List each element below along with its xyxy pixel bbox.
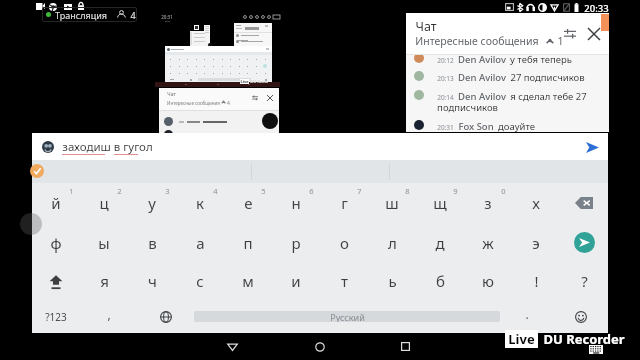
button[interactable]: с [176, 262, 224, 300]
button[interactable]: . [500, 300, 554, 333]
button[interactable]: и [272, 262, 320, 300]
staticText: 27 подписчиков [510, 71, 585, 84]
staticText: 20:33 [584, 2, 609, 12]
staticText: Интересные сообщения [167, 100, 220, 106]
staticText: й [51, 193, 61, 213]
button[interactable]: Switch language [138, 300, 194, 333]
staticText: Den Avilov [458, 71, 506, 84]
staticText: д [435, 233, 445, 253]
staticText: . [525, 306, 529, 322]
button[interactable]: э [512, 223, 560, 262]
staticText: подписчиков [437, 101, 498, 114]
button[interactable]: о [320, 223, 368, 262]
staticText: Чат [415, 18, 437, 35]
button[interactable]: ? [560, 262, 608, 300]
staticText: г [341, 193, 348, 213]
button[interactable]: 20:14 [406, 86, 609, 116]
button[interactable]: а [176, 223, 224, 262]
staticText: х [532, 193, 540, 213]
button[interactable]: Filter [559, 23, 581, 45]
button[interactable]: в [128, 223, 176, 262]
button[interactable]: н [272, 183, 320, 223]
button[interactable]: щ [416, 183, 464, 223]
staticText: 20:31 [437, 123, 454, 132]
button[interactable]: п [224, 223, 272, 262]
button[interactable]: б [416, 262, 464, 300]
button[interactable]: й [32, 183, 80, 223]
staticText: у [148, 193, 156, 213]
staticText: •••• [165, 20, 170, 24]
staticText: 4 [227, 100, 230, 107]
staticText: 1 [69, 186, 74, 196]
staticText: 7 [357, 186, 362, 196]
button[interactable]: Send [560, 223, 608, 262]
staticText: Чат [167, 91, 176, 98]
button[interactable]: ю [464, 262, 512, 300]
staticText: ! [534, 271, 539, 291]
button[interactable]: 20:13 [406, 67, 609, 86]
staticText: 2 [117, 186, 122, 196]
staticText: Трансляция [55, 9, 107, 21]
staticText: 1 [557, 34, 564, 48]
staticText: и [291, 271, 301, 291]
button[interactable]: ь [368, 262, 416, 300]
button[interactable]: ф [32, 223, 80, 262]
staticText: п [243, 233, 253, 253]
staticText: э [532, 233, 540, 253]
button[interactable]: Send message [581, 136, 603, 158]
button[interactable]: Home [277, 333, 363, 360]
button[interactable]: ?123 [32, 300, 80, 333]
staticText: Den Avilov [458, 90, 506, 103]
staticText: Русский [330, 311, 365, 322]
button[interactable]: р [272, 223, 320, 262]
button[interactable]: з [464, 183, 512, 223]
button[interactable]: ы [80, 223, 128, 262]
staticText: Den Avilov [458, 55, 506, 66]
button[interactable]: Backspace [560, 183, 608, 223]
staticText: Интересные сообщения [415, 34, 539, 48]
staticText: 8 [405, 186, 410, 196]
staticText: , [107, 306, 111, 322]
button[interactable]: у [128, 183, 176, 223]
button[interactable]: к [176, 183, 224, 223]
staticText: ь [388, 271, 397, 291]
button[interactable]: Трансляция [42, 7, 137, 22]
button[interactable]: г [320, 183, 368, 223]
button[interactable]: ц [80, 183, 128, 223]
button[interactable]: ж [464, 223, 512, 262]
staticText: м [242, 271, 254, 291]
button[interactable]: х [512, 183, 560, 223]
staticText: а [196, 233, 205, 253]
button[interactable]: д [416, 223, 464, 262]
staticText: Live [508, 330, 535, 348]
staticText: DU Recorder [543, 330, 625, 348]
button[interactable]: я [80, 262, 128, 300]
staticText: з [484, 193, 492, 213]
staticText: Live [240, 79, 249, 84]
button[interactable]: т [320, 262, 368, 300]
staticText: ю [482, 271, 494, 291]
button[interactable]: 20:12 [406, 55, 609, 68]
staticText: ф [50, 233, 62, 253]
button[interactable]: м [224, 262, 272, 300]
button[interactable]: Русский [194, 311, 500, 322]
staticText: заходиш в гугол [62, 139, 153, 155]
button[interactable]: Close [583, 23, 605, 45]
button[interactable]: Recent apps [362, 333, 448, 360]
staticText: 9 [453, 186, 458, 196]
staticText: ж [482, 233, 494, 253]
button[interactable]: ш [368, 183, 416, 223]
button[interactable]: 20:31 [406, 116, 609, 132]
button[interactable]: Back [189, 333, 275, 360]
button[interactable]: Shift [32, 262, 80, 300]
button[interactable]: е [224, 183, 272, 223]
button[interactable]: ч [128, 262, 176, 300]
staticText: ш [385, 193, 399, 213]
staticText: 4 [213, 186, 218, 196]
button[interactable]: Emoji [554, 300, 608, 333]
staticText: 20:13 [437, 74, 454, 83]
button[interactable]: , [80, 300, 138, 333]
button[interactable]: л [368, 223, 416, 262]
button[interactable]: ! [512, 262, 560, 300]
staticText: Fox Son [458, 120, 494, 132]
